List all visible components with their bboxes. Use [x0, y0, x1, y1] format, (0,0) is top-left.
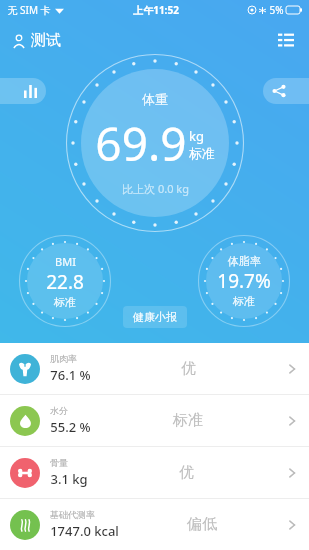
- staticText: 水分: [50, 405, 68, 416]
- staticText: 55.2 %: [50, 418, 91, 436]
- staticText: 骨量: [50, 457, 68, 468]
- staticText: 体脂率: [228, 254, 261, 268]
- staticText: 优: [181, 359, 196, 378]
- button[interactable]: 健康小报: [123, 306, 187, 328]
- staticText: 3.1 kg: [50, 470, 88, 488]
- staticText: 上午11:52: [133, 3, 179, 17]
- staticText: BMI: [55, 254, 76, 269]
- staticText: 1747.0 kcal: [50, 522, 119, 540]
- button[interactable]: 测试: [10, 29, 63, 52]
- staticText: 比上次 0.0 kg: [122, 181, 189, 196]
- staticText: 19.7%: [217, 268, 271, 294]
- staticText: 优: [179, 463, 194, 482]
- staticText: 标准: [233, 294, 255, 308]
- staticText: 22.8: [46, 269, 84, 295]
- button[interactable]: 骨量: [0, 447, 309, 498]
- button[interactable]: BMI: [18, 234, 112, 328]
- staticText: 肌肉率: [50, 353, 77, 364]
- staticText: 健康小报: [133, 310, 177, 324]
- staticText: 测试: [31, 31, 61, 50]
- staticText: kg: [189, 127, 204, 145]
- staticText: 标准: [173, 411, 203, 430]
- staticText: 5%: [269, 3, 284, 17]
- staticText: 69.9: [95, 112, 187, 175]
- staticText: 标准: [189, 145, 215, 161]
- button[interactable]: 水分: [0, 395, 309, 446]
- button[interactable]: 肌肉率: [0, 343, 309, 394]
- staticText: 偏低: [187, 515, 217, 534]
- staticText: 体重: [142, 91, 168, 107]
- staticText: 标准: [54, 295, 76, 309]
- staticText: 无 SIM 卡: [7, 3, 51, 17]
- button[interactable]: Share: [263, 78, 309, 104]
- button[interactable]: Records: [273, 27, 299, 53]
- button[interactable]: Trends: [0, 78, 46, 104]
- button[interactable]: 基础代测率: [0, 499, 309, 550]
- button[interactable]: 体脂率: [197, 234, 291, 328]
- staticText: 基础代测率: [50, 509, 95, 520]
- staticText: 76.1 %: [50, 366, 91, 384]
